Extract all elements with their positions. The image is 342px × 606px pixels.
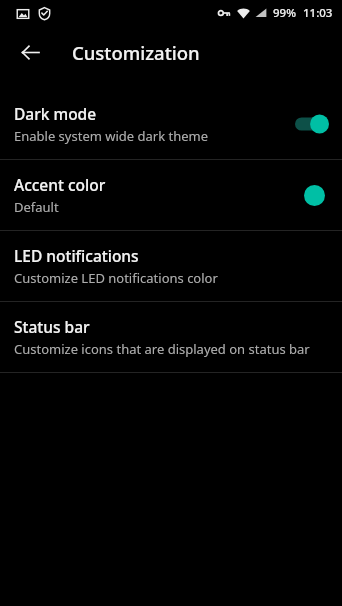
staticText: Customize LED notifications color xyxy=(14,269,218,287)
staticText: Customize icons that are displayed on st… xyxy=(14,340,310,358)
staticText: 99% xyxy=(273,5,296,21)
button[interactable]: Accent color xyxy=(0,160,342,230)
staticText: Default xyxy=(14,198,59,216)
staticText: Dark mode xyxy=(14,103,97,124)
staticText: 11:03 xyxy=(303,5,333,21)
button[interactable] xyxy=(295,113,329,135)
button[interactable]: Status bar xyxy=(0,302,342,372)
button[interactable]: Dark mode xyxy=(0,89,342,159)
staticText: Enable system wide dark theme xyxy=(14,127,209,145)
staticText: Accent color xyxy=(14,174,106,195)
button[interactable] xyxy=(299,180,329,210)
staticText: LED notifications xyxy=(14,245,139,266)
button[interactable]: LED notifications xyxy=(0,231,342,301)
staticText: Status bar xyxy=(14,316,90,337)
staticText: Customization xyxy=(72,40,200,65)
button[interactable]: Back xyxy=(14,36,46,68)
